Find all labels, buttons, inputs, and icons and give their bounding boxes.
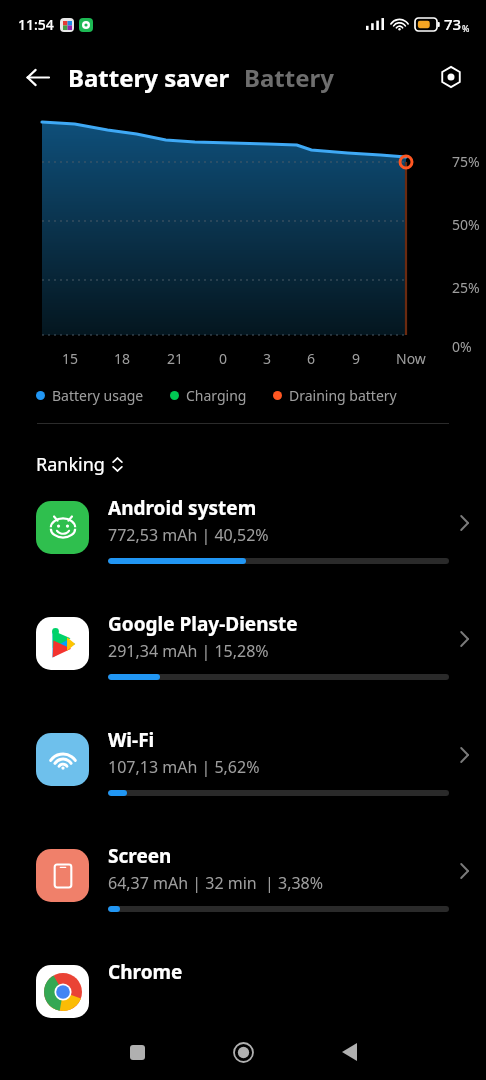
staticText: 6 [307,349,316,368]
staticText: Android system [108,495,257,521]
button[interactable]: Chrome [0,959,486,1075]
staticText: Google Play-Dienste [108,611,298,637]
staticText: Battery [244,61,334,94]
button[interactable]: Home [221,1030,265,1074]
staticText: 75% [452,152,480,171]
staticText: 64,37 mAh | 32 min | 3,38% [108,872,324,894]
staticText: 18 [114,349,131,368]
button[interactable]: Google Play-Dienste [0,611,486,727]
button[interactable]: Android system [0,495,486,611]
staticText: 0% [452,337,472,356]
staticText: 772,53 mAh | 40,52% [108,524,269,546]
staticText: Ranking [36,452,105,477]
staticText: 291,34 mAh | 15,28% [108,640,269,662]
staticText: % [462,22,470,34]
button[interactable]: Battery [244,61,334,94]
button[interactable]: Battery saver [68,61,230,94]
staticText: Charging [186,386,247,405]
staticText: 107,13 mAh | 5,62% [108,756,260,778]
staticText: 50% [452,215,480,234]
staticText: Wi-Fi [108,727,155,753]
button[interactable]: Ranking [36,452,123,477]
staticText: 25% [452,278,480,297]
button[interactable]: Wi-Fi [0,727,486,843]
staticText: 15 [62,349,79,368]
staticText: 9 [352,349,361,368]
staticText: 73 [444,14,462,34]
button[interactable]: Recent apps [115,1030,159,1074]
staticText: 11:54 [18,15,54,34]
staticText: Screen [108,843,172,869]
staticText: 21 [167,349,184,368]
button[interactable]: Settings [430,56,472,98]
staticText: Now [396,349,426,368]
staticText: 3 [263,349,272,368]
staticText: Battery saver [68,61,230,94]
staticText: 0 [219,349,228,368]
button[interactable]: Screen [0,843,486,959]
button[interactable]: Back [14,54,60,100]
staticText: Battery usage [52,386,144,405]
staticText: Chrome [108,959,183,985]
button[interactable]: Back [327,1030,371,1074]
staticText: Draining battery [289,386,397,405]
